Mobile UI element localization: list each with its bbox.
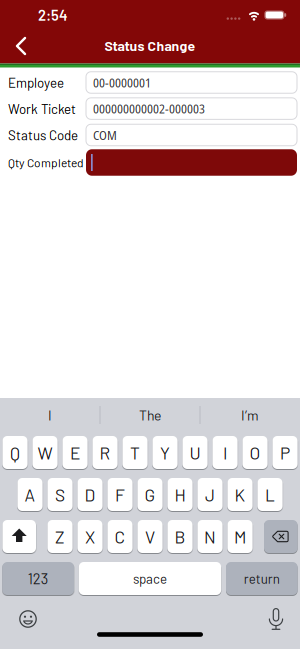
staticText: M	[234, 526, 246, 547]
staticText: 123	[28, 570, 49, 587]
staticText: L	[265, 484, 275, 505]
staticText: 2:54	[38, 6, 68, 24]
staticText: Z	[55, 526, 65, 547]
staticText: I	[223, 442, 227, 463]
button[interactable]: K	[227, 478, 253, 511]
button[interactable]: O	[242, 436, 268, 469]
staticText: N	[204, 526, 216, 547]
staticText: K	[234, 484, 245, 505]
staticText: X	[85, 526, 95, 547]
button[interactable]: COM	[86, 124, 297, 146]
button[interactable]: The	[101, 398, 199, 432]
staticText: COM	[93, 126, 117, 144]
staticText: return	[244, 570, 280, 586]
staticText: R	[99, 442, 110, 463]
button[interactable]: C	[107, 520, 133, 553]
button[interactable]: E	[62, 436, 88, 469]
staticText: Status Code	[8, 127, 78, 143]
staticText: Work Ticket	[8, 101, 76, 117]
button[interactable]: space	[79, 562, 221, 595]
button[interactable]: Back	[6, 31, 36, 61]
button[interactable]: U	[182, 436, 208, 469]
button[interactable]: M	[227, 520, 253, 553]
staticText: F	[115, 484, 125, 505]
staticText: U	[189, 442, 200, 463]
staticText: C	[114, 526, 125, 547]
button[interactable]: B	[167, 520, 193, 553]
button[interactable]: 00-0000001	[86, 72, 297, 93]
button[interactable]: J	[197, 478, 223, 511]
staticText: J	[205, 484, 215, 505]
staticText: 00-0000001	[93, 74, 151, 91]
staticText: Y	[160, 442, 170, 463]
staticText: G	[144, 484, 155, 505]
button[interactable]: A	[17, 478, 43, 511]
staticText: W	[37, 442, 52, 463]
button[interactable]: return	[226, 562, 298, 595]
button[interactable]: I’m	[201, 398, 299, 432]
button[interactable]	[86, 149, 297, 176]
staticText: Employee	[8, 74, 64, 90]
button[interactable]: I	[212, 436, 238, 469]
staticText: Q	[10, 442, 20, 463]
button[interactable]: I	[1, 398, 99, 432]
staticText: T	[130, 442, 140, 463]
button[interactable]: F	[107, 478, 133, 511]
button[interactable]: H	[167, 478, 193, 511]
button[interactable]: Emoji	[16, 607, 40, 631]
button[interactable]: G	[137, 478, 163, 511]
staticText: S	[55, 484, 65, 505]
staticText: 000000000002-000003	[93, 100, 205, 117]
button[interactable]: Y	[152, 436, 178, 469]
staticText: I’m	[241, 407, 259, 423]
button[interactable]: L	[257, 478, 283, 511]
button[interactable]: Shift	[2, 520, 36, 553]
staticText: I	[48, 407, 52, 423]
button[interactable]: W	[32, 436, 58, 469]
staticText: B	[174, 526, 185, 547]
staticText: The	[139, 407, 161, 423]
staticText: space	[133, 570, 167, 586]
staticText: Status Change	[104, 37, 195, 54]
button[interactable]: 123	[2, 562, 74, 595]
button[interactable]: S	[47, 478, 73, 511]
button[interactable]: V	[137, 520, 163, 553]
button[interactable]: D	[77, 478, 103, 511]
button[interactable]: R	[92, 436, 118, 469]
button[interactable]: T	[122, 436, 148, 469]
staticText: A	[24, 484, 35, 505]
button[interactable]: P	[272, 436, 298, 469]
button[interactable]: X	[77, 520, 103, 553]
staticText: H	[174, 484, 185, 505]
button[interactable]: Z	[47, 520, 73, 553]
staticText: E	[70, 442, 80, 463]
button[interactable]: Delete	[264, 520, 298, 553]
staticText: O	[249, 442, 260, 463]
staticText: Qty Completed	[8, 155, 84, 170]
staticText: D	[84, 484, 95, 505]
button[interactable]: N	[197, 520, 223, 553]
button[interactable]: Q	[2, 436, 28, 469]
button[interactable]: 000000000002-000003	[86, 98, 297, 119]
button[interactable]: Dictate	[266, 607, 286, 633]
staticText: P	[280, 442, 290, 463]
staticText: V	[145, 526, 155, 547]
